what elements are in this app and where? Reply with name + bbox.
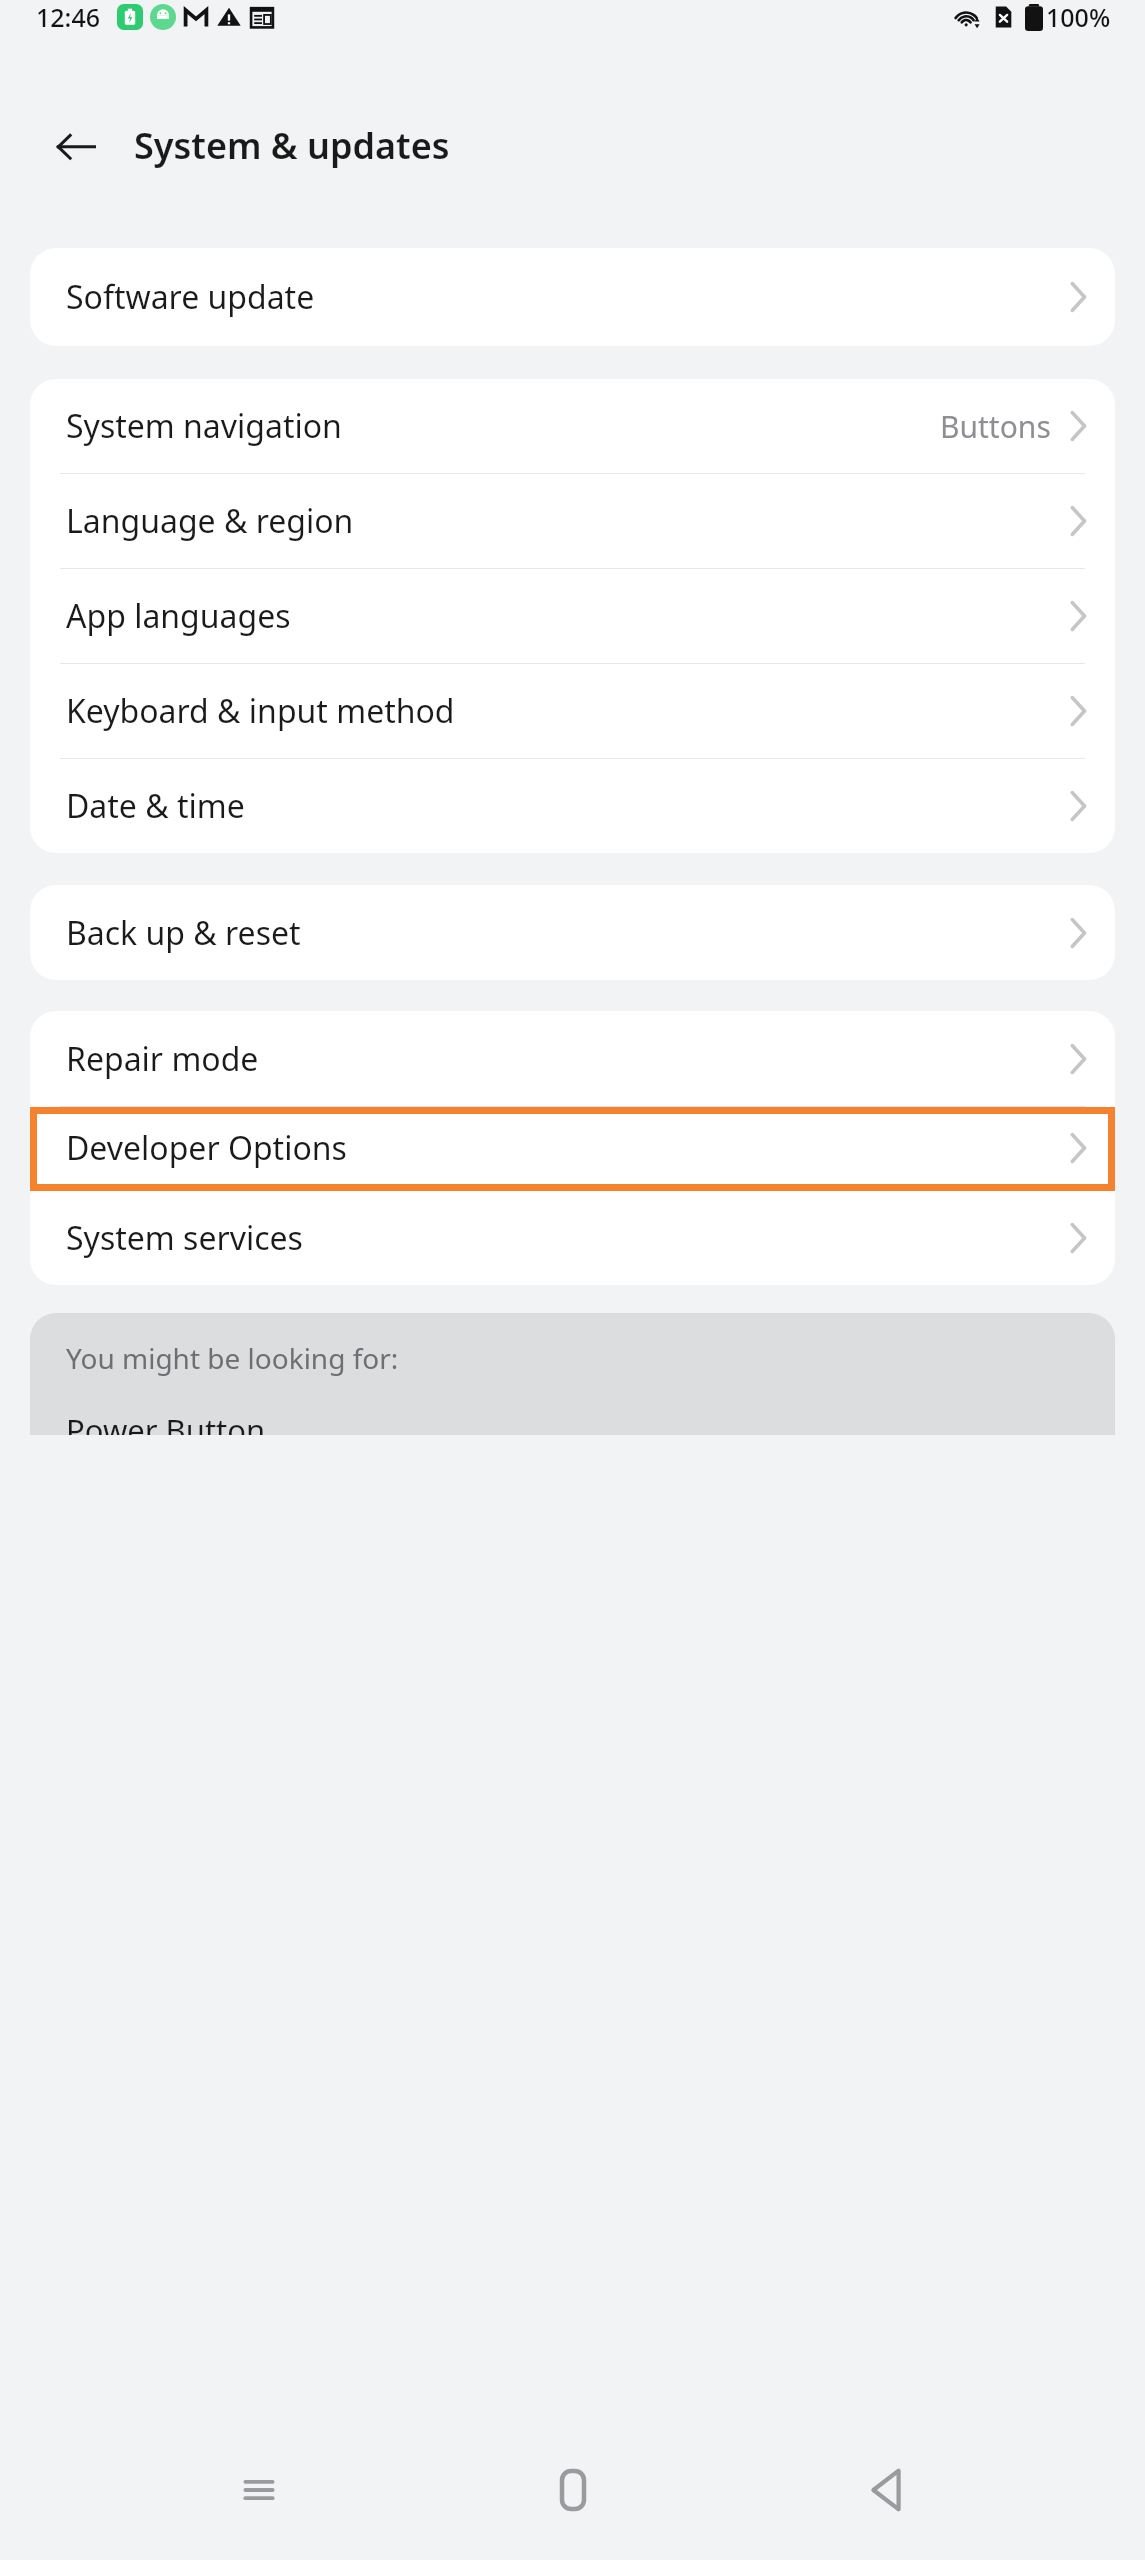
button[interactable]: Keyboard & input method [30, 664, 1115, 758]
staticText: Keyboard & input method [66, 689, 1069, 733]
staticText: App languages [66, 594, 1069, 638]
staticText: Repair mode [66, 1037, 1069, 1081]
button[interactable]: App languages [30, 569, 1115, 663]
button[interactable]: System navigation [30, 379, 1115, 473]
button[interactable]: Software update [30, 248, 1115, 346]
button[interactable]: Back [40, 110, 112, 182]
staticText: System & updates [134, 121, 450, 170]
button[interactable]: Recent apps [204, 2435, 314, 2545]
staticText: System navigation [66, 404, 940, 448]
button[interactable]: System services [30, 1190, 1115, 1285]
button[interactable]: Repair mode [30, 1011, 1115, 1106]
staticText: Buttons [940, 406, 1051, 447]
staticText: 100% [1046, 0, 1111, 34]
staticText: Date & time [66, 784, 1069, 828]
button[interactable]: Language & region [30, 474, 1115, 568]
button[interactable]: Date & time [30, 759, 1115, 853]
staticText: You might be looking for: [66, 1339, 399, 1377]
staticText: System services [66, 1216, 1069, 1260]
staticText: Back up & reset [66, 911, 1069, 955]
button[interactable]: Back [831, 2435, 941, 2545]
button[interactable]: Back up & reset [30, 885, 1115, 980]
staticText: Power Button [66, 1409, 266, 1435]
button[interactable]: Developer Options [30, 1107, 1115, 1189]
staticText: Software update [66, 275, 1069, 319]
staticText: Language & region [66, 499, 1069, 543]
button[interactable]: Home [518, 2435, 628, 2545]
staticText: Developer Options [66, 1126, 1069, 1170]
staticText: 12:46 [36, 0, 101, 34]
